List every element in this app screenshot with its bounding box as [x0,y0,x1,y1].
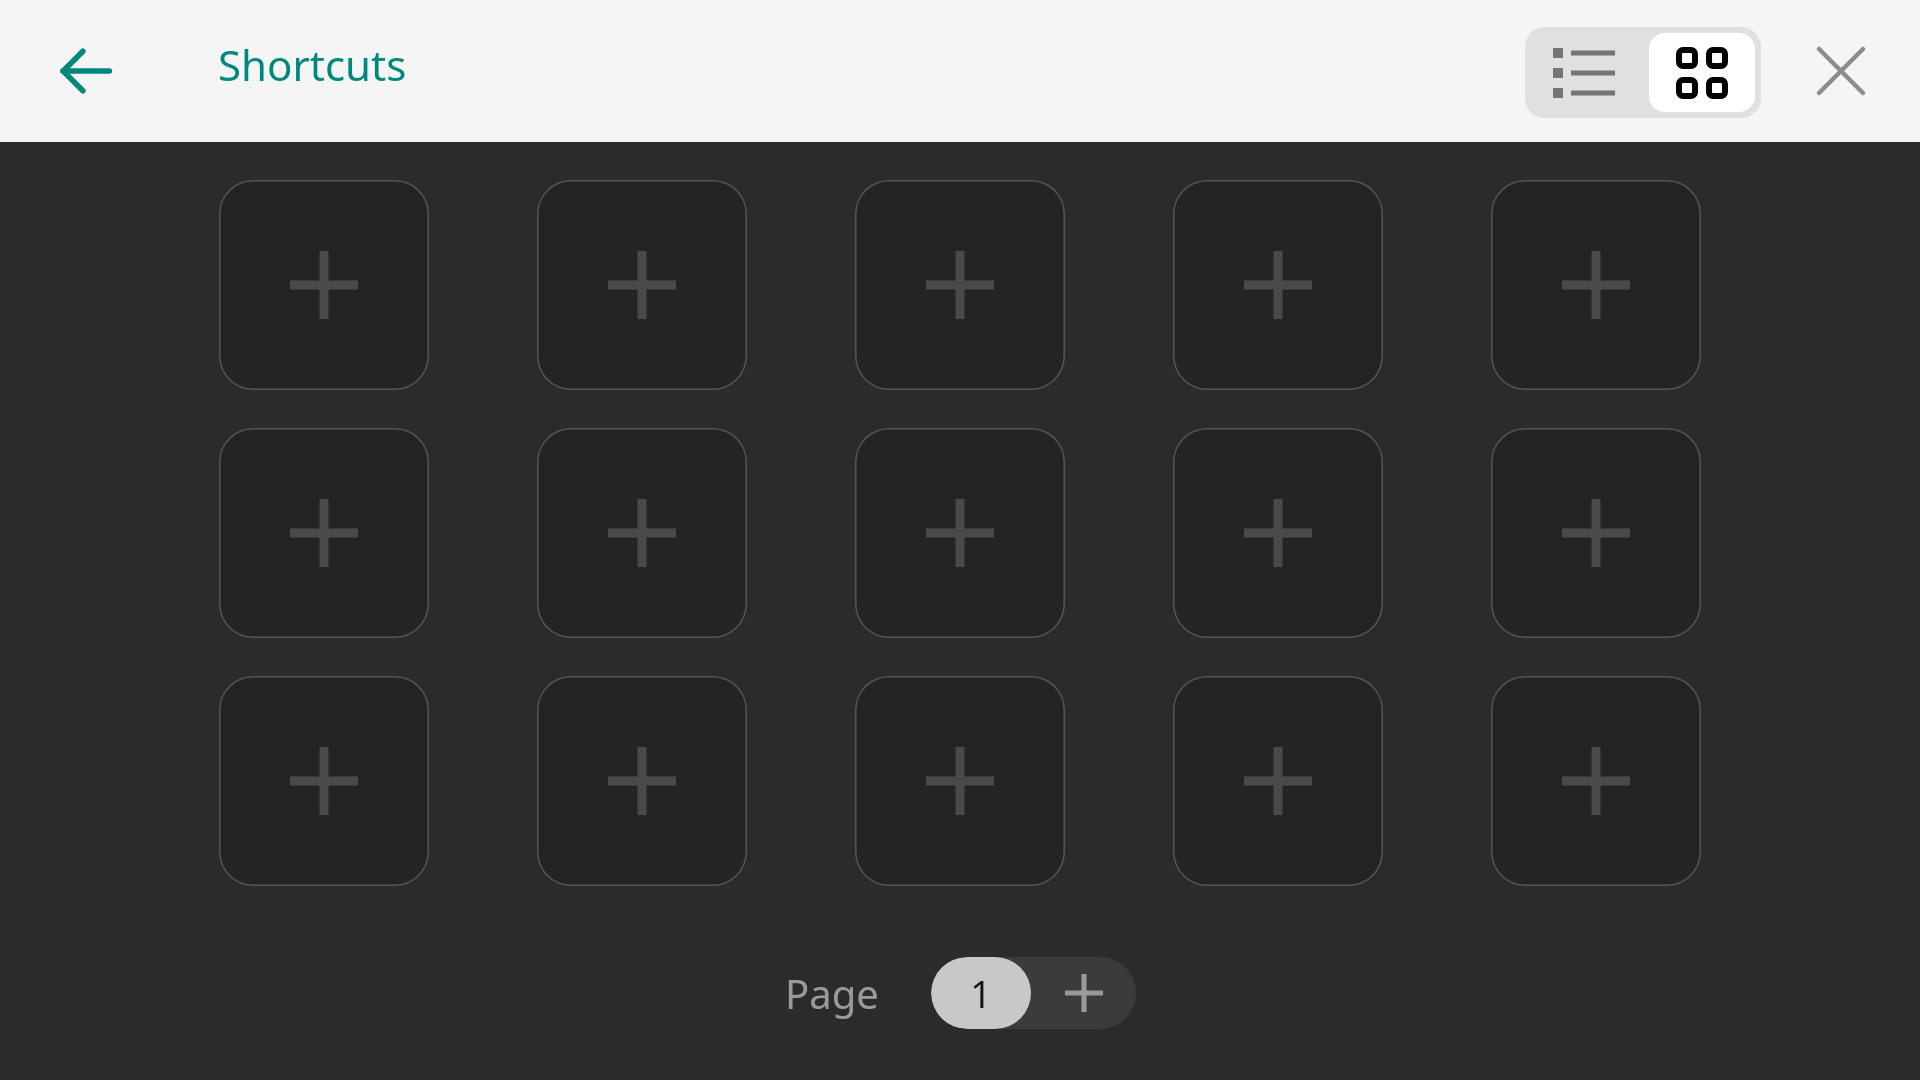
button[interactable]: List view [1525,27,1643,118]
button[interactable]: Add shortcut [1491,428,1701,638]
button[interactable]: Back [46,31,126,111]
button[interactable]: Add shortcut [537,180,747,390]
button[interactable]: Add shortcut [855,428,1065,638]
button[interactable]: Add shortcut [537,428,747,638]
button[interactable]: Add shortcut [219,428,429,638]
button[interactable]: Add shortcut [1491,180,1701,390]
button[interactable]: Add shortcut [219,180,429,390]
button[interactable]: 1 [931,957,1031,1029]
button[interactable]: Add shortcut [1173,180,1383,390]
button[interactable]: Add shortcut [537,676,747,886]
button[interactable]: Close [1802,32,1880,110]
button[interactable]: Add page [1031,957,1136,1029]
staticText: 1 [970,967,992,1019]
button[interactable]: Add shortcut [855,180,1065,390]
button[interactable]: Grid view [1643,27,1761,118]
staticText: Page [785,966,879,1020]
button[interactable]: Add shortcut [1491,676,1701,886]
staticText: Shortcuts [218,36,407,93]
button[interactable]: Add shortcut [219,676,429,886]
button[interactable]: Add shortcut [855,676,1065,886]
button[interactable]: Add shortcut [1173,428,1383,638]
button[interactable]: Add shortcut [1173,676,1383,886]
